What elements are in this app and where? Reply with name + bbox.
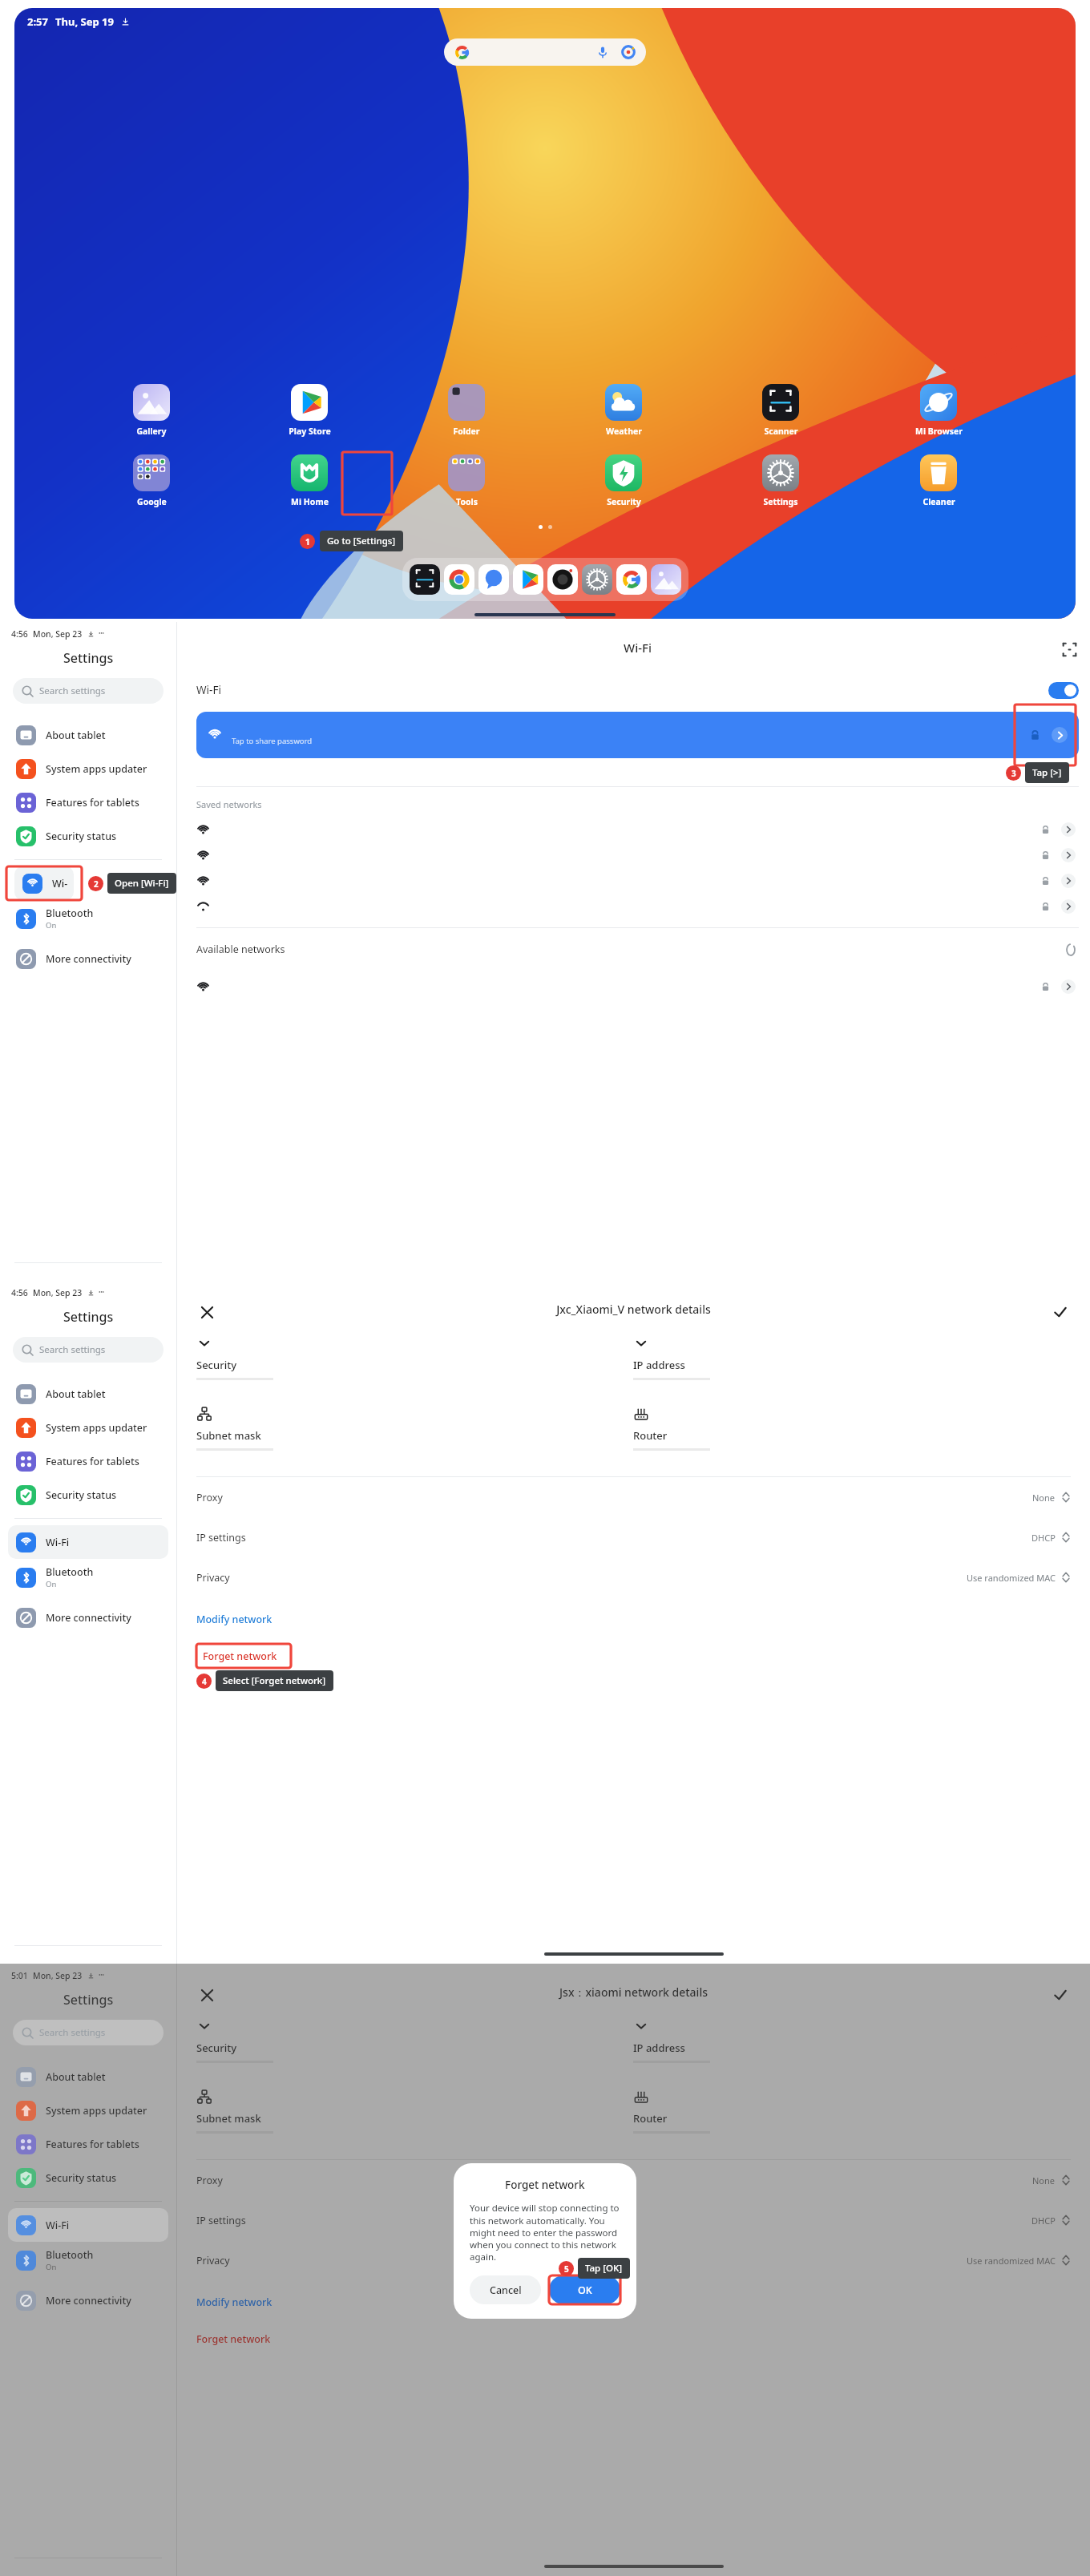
button[interactable]: Close [196, 1302, 217, 1322]
button[interactable]: More connectivity options [8, 942, 168, 975]
staticText: Scanner [764, 426, 798, 437]
button[interactable]: More connectivity options [8, 2283, 168, 2317]
button[interactable]: Tap to share password [196, 712, 1079, 758]
button[interactable]: System apps updater [8, 1411, 168, 1444]
button[interactable]: Scan QR code [1060, 640, 1079, 659]
button[interactable]: Forget network [196, 1644, 291, 1668]
button[interactable]: Subnet mask [196, 1406, 633, 1451]
button[interactable]: Gallery [122, 384, 181, 437]
button[interactable]: Proxy [196, 2160, 1071, 2200]
staticText: Use randomized MAC [967, 1572, 1056, 1584]
button[interactable]: IP settings [196, 2200, 1071, 2240]
staticText: Mi Home [291, 496, 329, 507]
staticText: Security status [46, 830, 117, 843]
button[interactable]: Wi-Fi [8, 2208, 168, 2242]
button[interactable] [196, 868, 1079, 894]
button[interactable]: Mi Browser [909, 384, 968, 437]
button[interactable]: Wi-Fi [196, 676, 1079, 704]
button[interactable]: Mi Home [280, 454, 339, 507]
button[interactable]: Security [196, 1335, 633, 1380]
button[interactable]: Proxy [196, 1477, 1071, 1517]
staticText: More connectivity options [46, 952, 168, 966]
button[interactable]: Bluetooth [8, 900, 168, 937]
staticText: Mon, Sep 23 [33, 628, 83, 640]
button[interactable]: Tools [437, 454, 496, 507]
button[interactable]: Search settings [13, 678, 163, 704]
button[interactable] [196, 817, 1079, 842]
button[interactable]: Play Store [280, 384, 339, 437]
button[interactable]: Wi-Fi [8, 1525, 168, 1559]
button[interactable]: Router [633, 2089, 1071, 2134]
button[interactable]: App 3 [513, 564, 543, 595]
button[interactable]: Subnet mask [196, 2089, 633, 2134]
button[interactable]: Google [122, 454, 181, 507]
button[interactable]: Close [196, 1984, 217, 2005]
staticText: Thu, Sep 19 [55, 14, 114, 29]
staticText: Tap to share password [232, 736, 313, 746]
button[interactable]: Features for tablets [8, 785, 168, 819]
button[interactable]: Bluetooth [8, 2242, 168, 2279]
button[interactable]: Cleaner [909, 454, 968, 507]
button[interactable]: Security status [8, 819, 168, 853]
staticText: Features for tablets [46, 1455, 139, 1468]
button[interactable]: Search settings [13, 2020, 163, 2045]
staticText: Mon, Sep 23 [33, 1287, 83, 1298]
button[interactable]: Security status [8, 1478, 168, 1512]
button[interactable]: System apps updater [8, 2094, 168, 2127]
button[interactable]: Features for tablets [8, 2127, 168, 2161]
button[interactable] [196, 894, 1079, 919]
button[interactable] [444, 38, 646, 66]
button[interactable]: Weather [594, 384, 653, 437]
button[interactable]: Security status [8, 2161, 168, 2194]
button[interactable]: App 6 [616, 564, 647, 595]
button[interactable]: Scanner [751, 384, 810, 437]
button[interactable]: Search settings [13, 1337, 163, 1363]
button[interactable]: App 0 [410, 564, 440, 595]
button[interactable]: App 5 [582, 564, 612, 595]
button[interactable]: Bluetooth [8, 1559, 168, 1596]
staticText: System apps updater [46, 762, 147, 776]
button[interactable]: Privacy [196, 1557, 1071, 1597]
staticText: Mi Browser [915, 426, 963, 437]
button[interactable]: IP address [633, 2018, 1071, 2063]
button[interactable]: Modify network [196, 2290, 272, 2314]
button[interactable]: Settings [751, 454, 810, 507]
button[interactable]: Cancel [470, 2275, 541, 2304]
staticText: On [46, 920, 57, 931]
button[interactable] [196, 842, 1079, 868]
button[interactable]: IP address [633, 1335, 1071, 1380]
staticText: Saved networks [196, 798, 262, 810]
staticText: Search settings [39, 684, 106, 697]
button[interactable]: Privacy [196, 2240, 1071, 2280]
staticText: Your device will stop connecting to this… [470, 2202, 620, 2263]
button[interactable]: App 7 [651, 564, 681, 595]
button[interactable]: About tablet [8, 718, 168, 752]
staticText: Tools [456, 496, 478, 507]
button[interactable]: Modify network [196, 1607, 272, 1631]
button[interactable]: App 2 [478, 564, 509, 595]
button[interactable]: More connectivity options [8, 1601, 168, 1634]
button[interactable]: Forget network [196, 2327, 271, 2351]
button[interactable]: Router [633, 1406, 1071, 1451]
staticText: Jsx：xiaomi network details [196, 1984, 1071, 2000]
staticText: System apps updater [46, 2104, 147, 2118]
button[interactable]: Security [196, 2018, 633, 2063]
staticText: Settings [63, 649, 114, 667]
button[interactable]: About tablet [8, 1377, 168, 1411]
staticText: Router [633, 2111, 668, 2126]
button[interactable]: Confirm [1050, 1984, 1071, 2005]
button[interactable]: Confirm [1050, 1302, 1071, 1322]
button[interactable]: Folder [437, 384, 496, 437]
staticText: Open [Wi-Fi] [115, 877, 169, 890]
button[interactable]: IP settings [196, 1517, 1071, 1557]
button[interactable] [196, 974, 1079, 999]
button[interactable]: Security [594, 454, 653, 507]
button[interactable]: App 4 [547, 564, 578, 595]
button[interactable]: App 1 [444, 564, 474, 595]
button[interactable]: Features for tablets [8, 1444, 168, 1478]
button[interactable]: About tablet [8, 2060, 168, 2094]
staticText: Available networks [196, 943, 285, 956]
button[interactable]: System apps updater [8, 752, 168, 785]
button[interactable]: Wi-Fi [14, 866, 74, 900]
button[interactable]: OK [549, 2275, 620, 2304]
